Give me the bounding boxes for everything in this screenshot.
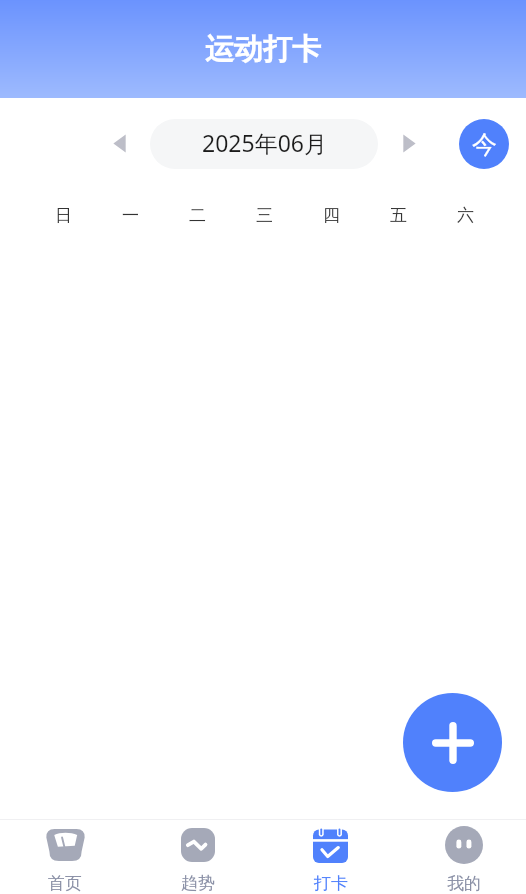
button[interactable]: 下个月	[393, 127, 426, 160]
staticText: 二	[189, 205, 206, 226]
staticText: 日	[55, 205, 72, 226]
staticText: 四	[323, 205, 340, 226]
button[interactable]: 2025年06月	[150, 119, 378, 169]
button[interactable]: 添加打卡	[403, 693, 502, 792]
staticText: 今	[472, 129, 497, 160]
staticText: 运动打卡	[205, 31, 321, 68]
button[interactable]: 首页	[0, 820, 131, 894]
staticText: 趋势	[181, 873, 215, 894]
staticText: 六	[457, 205, 474, 226]
button[interactable]: 趋势	[131, 820, 264, 894]
button[interactable]: 上个月	[103, 127, 136, 160]
staticText: 打卡	[314, 873, 348, 894]
staticText: 三	[256, 205, 273, 226]
staticText: 首页	[48, 873, 82, 894]
button[interactable]: 今	[459, 119, 509, 169]
staticText: 五	[390, 205, 407, 226]
staticText: 我的	[447, 873, 481, 894]
button[interactable]: 打卡	[264, 820, 397, 894]
staticText: 一	[122, 205, 139, 226]
staticText: 2025年06月	[202, 127, 327, 158]
button[interactable]: 我的	[397, 820, 526, 894]
